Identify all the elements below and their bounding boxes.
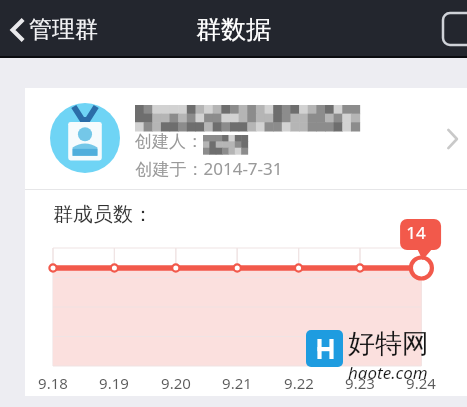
- staticText: 创建人：: [135, 131, 203, 152]
- staticText: 9.19: [99, 373, 129, 393]
- staticText: 好特网: [348, 327, 429, 361]
- staticText: 9.21: [222, 373, 252, 393]
- button[interactable]: 创建人：: [25, 88, 467, 189]
- button[interactable]: 管理群: [0, 9, 110, 50]
- staticText: 9.18: [38, 373, 68, 393]
- staticText: 群成员数：: [53, 202, 153, 227]
- staticText: 创建于：2014-7-31: [135, 157, 283, 180]
- staticText: 9.22: [284, 373, 314, 393]
- staticText: 群数据: [196, 14, 271, 45]
- staticText: 14: [406, 221, 426, 244]
- staticText: 9.24: [406, 373, 436, 393]
- staticText: 9.23: [345, 373, 375, 393]
- staticText: haote.com: [348, 361, 428, 384]
- staticText: 9.20: [161, 373, 191, 393]
- staticText: 管理群: [29, 15, 98, 44]
- button[interactable]: More: [443, 13, 467, 45]
